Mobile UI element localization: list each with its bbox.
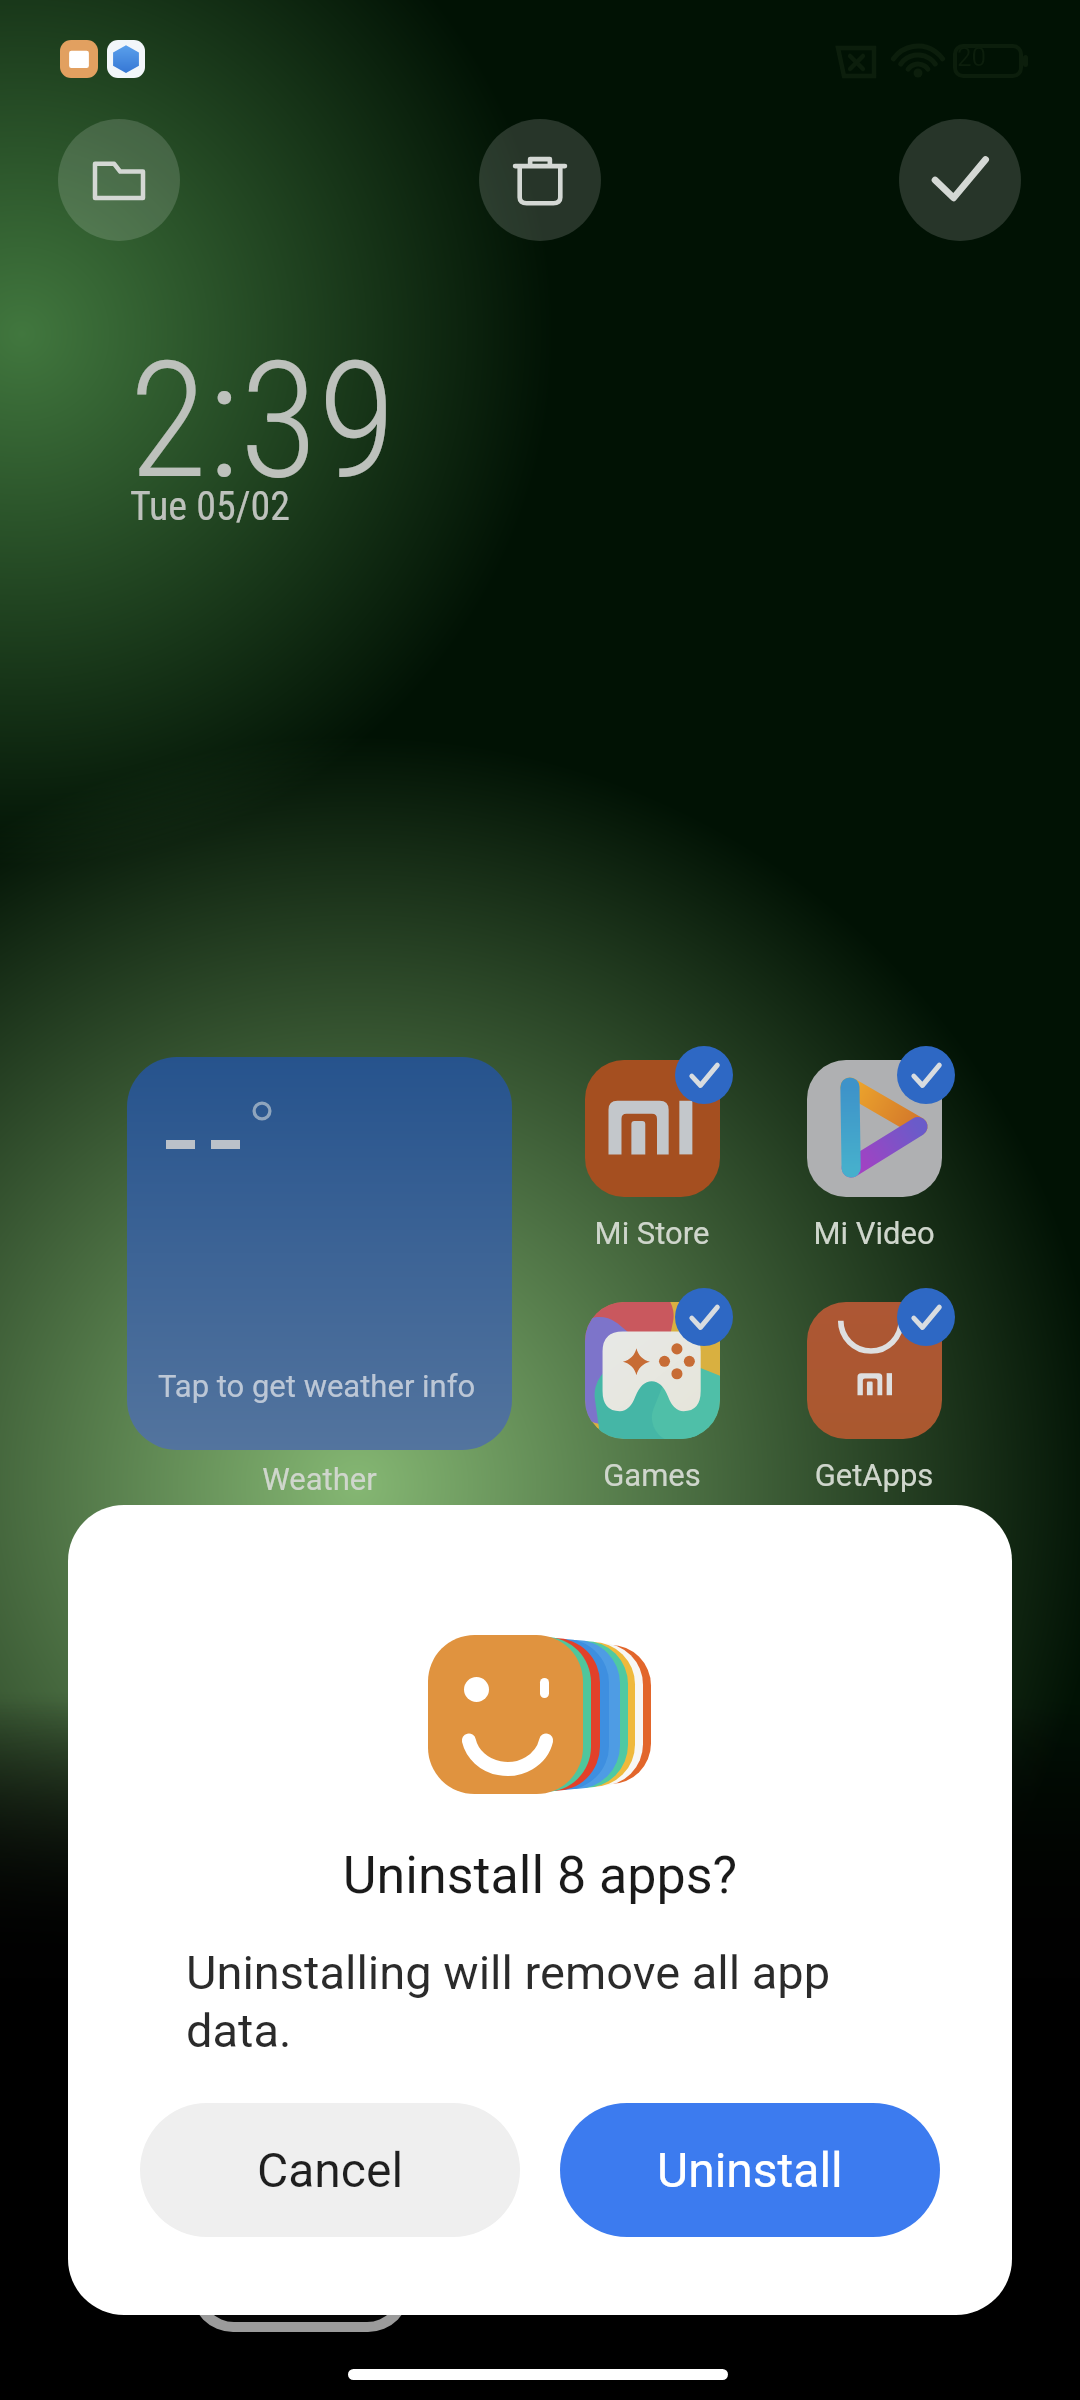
staticText: Weather: [127, 1461, 512, 1497]
button[interactable]: Create folder: [58, 119, 180, 241]
button[interactable]: Uninstall: [479, 119, 601, 241]
button[interactable]: Uninstall: [560, 2103, 940, 2237]
button[interactable]: Games: [542, 1302, 762, 1439]
staticText: 20: [957, 42, 987, 72]
button[interactable]: Tap to get weather info: [127, 1057, 512, 1450]
button[interactable]: Done: [899, 119, 1021, 241]
staticText: GetApps: [764, 1457, 984, 1493]
staticText: Mi Video: [764, 1215, 984, 1251]
staticText: Uninstall: [657, 2142, 843, 2198]
staticText: Tap to get weather info: [158, 1368, 476, 1404]
button[interactable]: Mi Video: [764, 1060, 984, 1197]
staticText: Cancel: [257, 2142, 404, 2198]
button[interactable]: Cancel: [140, 2103, 520, 2237]
staticText: Uninstall 8 apps?: [68, 1845, 1012, 1906]
button[interactable]: GetApps: [764, 1302, 984, 1439]
button[interactable]: Mi Store: [542, 1060, 762, 1197]
staticText: Uninstalling will remove all app data.: [186, 1945, 846, 2058]
staticText: Mi Store: [542, 1215, 762, 1251]
staticText: Games: [542, 1457, 762, 1493]
staticText: Tue 05/02: [130, 483, 291, 530]
staticText: 2:39: [129, 327, 397, 516]
